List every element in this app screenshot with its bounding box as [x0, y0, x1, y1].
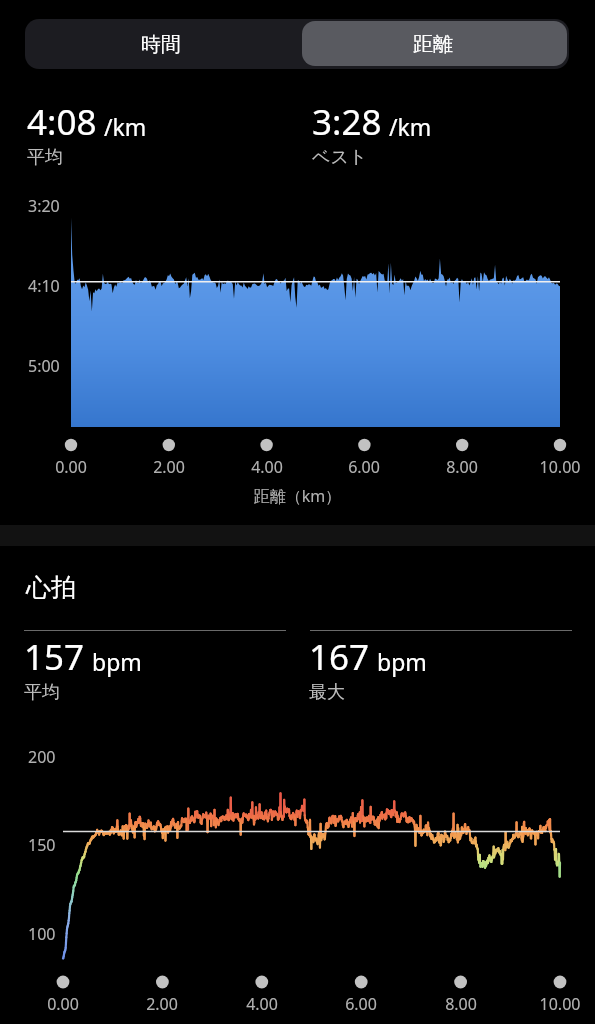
staticText: /km: [104, 111, 147, 142]
staticText: 8.00: [432, 456, 492, 478]
staticText: 100: [28, 923, 56, 945]
staticText: 4.00: [237, 456, 297, 478]
staticText: 167: [309, 633, 370, 681]
staticText: bpm: [92, 646, 142, 677]
staticText: 0.00: [33, 993, 93, 1015]
staticText: 157: [24, 633, 85, 681]
button[interactable]: 時間: [25, 19, 297, 69]
staticText: 150: [28, 834, 56, 856]
staticText: 3:20: [28, 195, 60, 217]
staticText: 平均: [24, 681, 60, 704]
staticText: 心拍: [26, 572, 76, 603]
staticText: 6.00: [334, 456, 394, 478]
staticText: 時間: [141, 32, 181, 57]
staticText: 10.00: [530, 456, 590, 478]
staticText: 0.00: [41, 456, 101, 478]
staticText: 距離: [413, 32, 453, 57]
staticText: 6.00: [331, 993, 391, 1015]
staticText: ベスト: [312, 146, 368, 169]
staticText: /km: [389, 111, 432, 142]
staticText: 10.00: [530, 993, 590, 1015]
staticText: 平均: [27, 146, 63, 169]
staticText: bpm: [377, 646, 427, 677]
button[interactable]: 距離: [297, 19, 569, 69]
staticText: 200: [28, 746, 56, 768]
staticText: 2.00: [139, 456, 199, 478]
staticText: 4:08: [27, 98, 97, 146]
staticText: 8.00: [431, 993, 491, 1015]
staticText: 2.00: [132, 993, 192, 1015]
staticText: 最大: [309, 681, 345, 704]
staticText: 5:00: [28, 355, 60, 377]
staticText: 4:10: [28, 275, 60, 297]
staticText: 3:28: [312, 98, 382, 146]
staticText: 距離（km）: [0, 485, 595, 507]
staticText: 4.00: [232, 993, 292, 1015]
